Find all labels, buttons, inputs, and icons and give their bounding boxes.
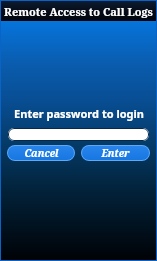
button[interactable]: Cancel bbox=[7, 145, 75, 161]
staticText: Remote Access to Call Logs bbox=[4, 4, 153, 19]
staticText: Cancel bbox=[24, 146, 59, 160]
button[interactable]: Enter bbox=[81, 145, 150, 161]
button[interactable] bbox=[8, 128, 149, 141]
staticText: Enter bbox=[101, 146, 130, 160]
staticText: Enter password to login bbox=[14, 106, 144, 121]
